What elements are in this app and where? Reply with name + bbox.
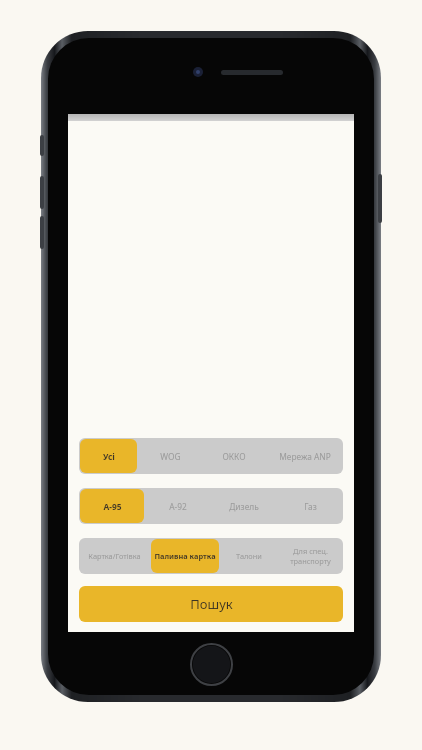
button[interactable]: А-95 — [80, 489, 144, 523]
staticText: Картка/Готівка — [88, 551, 141, 561]
staticText: Для спец. транспорту — [290, 546, 331, 566]
staticText: Мережа ANP — [279, 451, 331, 462]
button[interactable]: ОККО — [203, 439, 265, 473]
staticText: Талони — [236, 551, 262, 561]
staticText: Газ — [304, 501, 317, 512]
staticText: WOG — [160, 451, 181, 462]
button[interactable]: Пошук — [79, 586, 343, 622]
button[interactable]: Усі — [80, 439, 137, 473]
staticText: А-92 — [169, 501, 187, 512]
button[interactable]: Газ — [278, 489, 342, 523]
button[interactable]: Home — [190, 643, 233, 686]
button[interactable]: А-92 — [146, 489, 210, 523]
button[interactable]: WOG — [139, 439, 201, 473]
staticText: Усі — [103, 451, 115, 462]
button[interactable]: Дизель — [212, 489, 276, 523]
button[interactable]: Для спец. транспорту — [279, 539, 342, 573]
button[interactable]: Мережа ANP — [267, 439, 342, 473]
button[interactable]: Паливна картка — [151, 539, 219, 573]
button[interactable]: Талони — [221, 539, 277, 573]
button[interactable]: Картка/Готівка — [80, 539, 149, 573]
staticText: Паливна картка — [154, 551, 216, 561]
staticText: А-95 — [103, 501, 122, 512]
staticText: ОККО — [222, 451, 246, 462]
staticText: Пошук — [190, 595, 233, 613]
staticText: Дизель — [229, 501, 259, 512]
